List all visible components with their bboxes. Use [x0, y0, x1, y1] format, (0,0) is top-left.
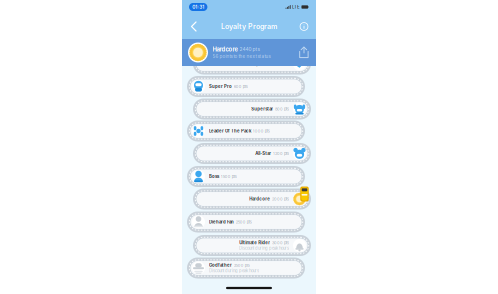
staticText: 600 pts — [234, 84, 248, 89]
button[interactable]: Diehard Fan — [187, 211, 305, 232]
button[interactable]: Godfather — [187, 257, 305, 278]
staticText: Discount during peak hours — [209, 268, 259, 273]
button[interactable]: Leader Of The Pack — [187, 120, 305, 141]
button[interactable]: Superstar — [193, 98, 311, 119]
button[interactable]: All-Star — [193, 143, 311, 164]
button[interactable]: Super Pro — [187, 76, 305, 97]
staticText: Boss — [209, 174, 219, 179]
staticText: Leader Of The Pack — [209, 128, 251, 134]
staticText: 3500 pts — [234, 263, 250, 268]
staticText: Superstar — [251, 106, 273, 112]
staticText: Diehard Fan — [209, 219, 234, 225]
staticText: Super Pro — [209, 84, 232, 89]
button[interactable]: Information — [297, 18, 311, 34]
staticText: 1000 pts — [253, 129, 270, 133]
staticText: 3000 pts — [272, 240, 289, 245]
staticText: Ultimate Rider — [239, 240, 270, 245]
staticText: Godfather — [209, 263, 232, 268]
staticText: 2500 pts — [236, 220, 252, 224]
staticText: All-Star — [255, 151, 271, 156]
staticText: 56 points to the next status — [212, 54, 270, 59]
staticText: 2440 pts — [239, 46, 260, 52]
staticText: 1500 pts — [221, 174, 237, 179]
staticText: Top Rider — [250, 61, 272, 67]
staticText: 01:31 — [192, 4, 204, 10]
button[interactable]: Top Rider — [193, 53, 311, 74]
button[interactable]: Ultimate Rider — [193, 235, 311, 256]
button[interactable]: Hardcore — [193, 188, 311, 209]
staticText: Loyalty Program — [221, 22, 277, 31]
staticText: 800 pts — [275, 107, 289, 111]
staticText: Hardcore — [212, 46, 237, 53]
button[interactable]: Boss — [187, 166, 305, 187]
staticText: 2000 pts — [272, 197, 289, 201]
button[interactable]: Share — [298, 45, 310, 59]
staticText: LTE — [292, 4, 300, 10]
button[interactable]: Back — [187, 18, 201, 34]
staticText: 1200 pts — [273, 151, 289, 156]
staticText: Hardcore — [249, 196, 270, 202]
staticText: Discount during peak hours — [239, 246, 289, 251]
